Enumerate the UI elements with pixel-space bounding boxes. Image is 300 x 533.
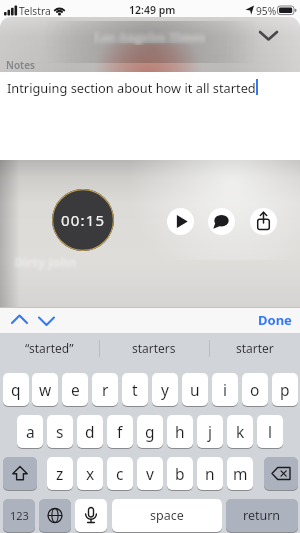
staticText: 123 [10,508,29,523]
staticText: g [145,421,155,442]
button[interactable] [75,499,107,532]
staticText: Done [258,311,292,329]
staticText: 12:49 pm [129,3,176,17]
button[interactable]: space [112,499,222,532]
button[interactable]: a [17,415,43,448]
button[interactable] [208,208,235,235]
button[interactable] [3,457,37,490]
button[interactable]: o [242,373,268,406]
button[interactable]: b [167,457,193,490]
staticText: c [116,463,124,484]
staticText: w [39,379,52,400]
staticText: e [71,379,80,400]
staticText: b [175,463,185,484]
button[interactable] [167,208,194,235]
staticText: k [236,421,245,442]
staticText: f [117,421,123,442]
staticText: Telstra [19,4,51,18]
staticText: p [280,379,290,400]
staticText: Notes [6,58,35,72]
button[interactable]: starters [99,333,209,363]
button[interactable]: v [137,457,163,490]
staticText: o [250,379,260,400]
staticText: 95% [256,4,277,18]
staticText: Los Angeles Times [94,29,206,45]
button[interactable]: l [257,415,283,448]
staticText: y [161,379,169,400]
staticText: space [150,507,184,524]
button[interactable]: z [47,457,73,490]
staticText: z [56,463,64,484]
button[interactable]: k [227,415,253,448]
button[interactable] [7,310,32,331]
staticText: u [190,379,200,400]
button[interactable] [264,457,298,490]
staticText: t [132,379,138,400]
button[interactable]: h [167,415,193,448]
button[interactable]: “started” [0,333,99,363]
staticText: n [205,463,215,484]
button[interactable]: y [152,373,178,406]
staticText: s [56,421,64,442]
button[interactable]: d [77,415,103,448]
button[interactable] [250,25,288,47]
button[interactable]: t [122,373,148,406]
button[interactable]: p [272,373,298,406]
button[interactable] [39,499,71,532]
staticText: q [11,379,21,400]
button[interactable]: x [77,457,103,490]
staticText: d [85,421,95,442]
staticText: r [102,379,109,400]
button[interactable]: m [227,457,253,490]
button[interactable]: f [107,415,133,448]
staticText: l [268,421,272,442]
button[interactable]: r [92,373,118,406]
staticText: x [86,463,95,484]
button[interactable]: g [137,415,163,448]
button[interactable] [34,310,59,331]
staticText: v [146,463,154,484]
staticText: Dirty John [14,254,77,271]
staticText: Intriguing section about how it all star… [7,79,256,96]
staticText: starters [132,340,176,356]
button[interactable]: j [197,415,223,448]
button[interactable]: q [3,373,29,406]
staticText: a [26,421,35,442]
staticText: “started” [25,340,74,356]
button[interactable]: return [226,499,298,532]
staticText: m [233,463,248,484]
staticText: return [243,507,281,524]
staticText: h [175,421,185,442]
button[interactable]: w [32,373,58,406]
button[interactable]: e [62,373,88,406]
button[interactable]: i [212,373,238,406]
button[interactable]: 123 [3,499,35,532]
button[interactable]: starter [209,333,300,363]
staticText: starter [236,340,274,356]
button[interactable]: s [47,415,73,448]
button[interactable]: n [197,457,223,490]
staticText: 00:15 [61,210,106,230]
button[interactable]: u [182,373,208,406]
button[interactable]: c [107,457,133,490]
button[interactable]: Done [250,307,300,333]
staticText: i [223,379,227,400]
staticText: j [208,421,212,442]
button[interactable] [250,208,277,235]
